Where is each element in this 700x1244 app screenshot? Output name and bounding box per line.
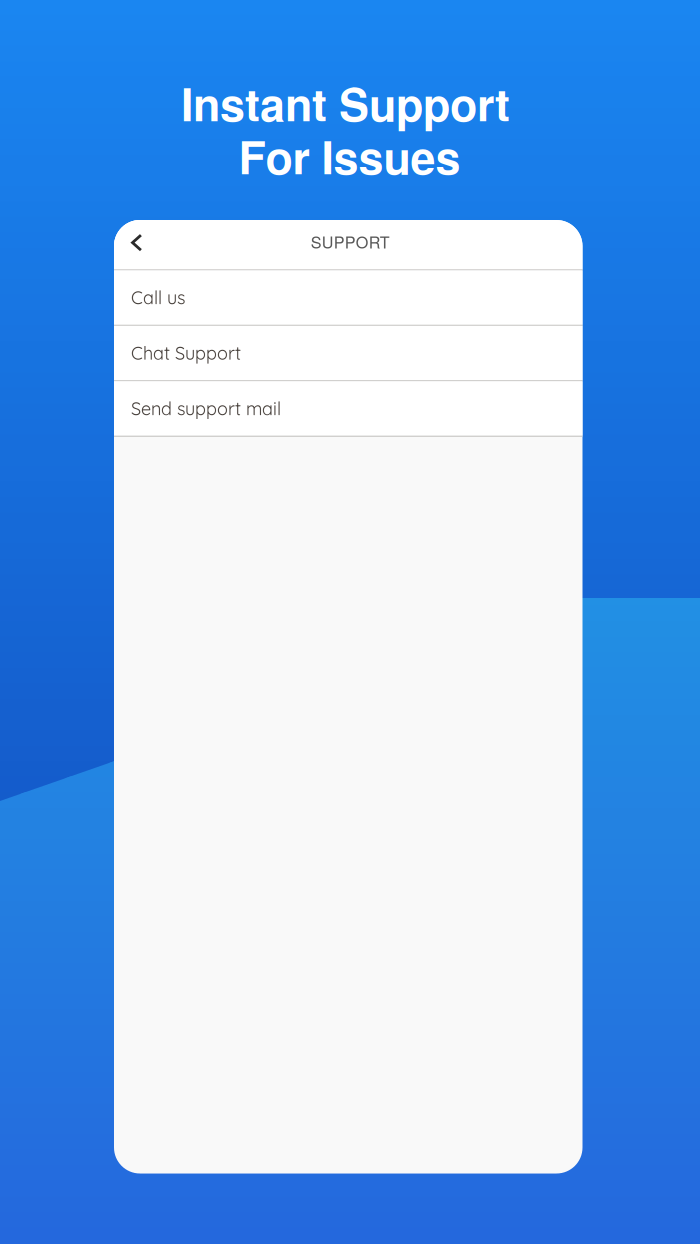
button[interactable]: Call us — [114, 270, 582, 325]
staticText: Call us — [131, 286, 185, 309]
button[interactable]: Chat Support — [114, 326, 582, 380]
staticText: Send support mail — [131, 397, 281, 420]
button[interactable]: Send support mail — [114, 381, 582, 436]
staticText: Chat Support — [131, 342, 241, 364]
button[interactable]: Back — [114, 220, 160, 269]
staticText: Instant Support — [181, 71, 510, 135]
staticText: For Issues — [238, 124, 460, 188]
staticText: SUPPORT — [311, 230, 390, 253]
